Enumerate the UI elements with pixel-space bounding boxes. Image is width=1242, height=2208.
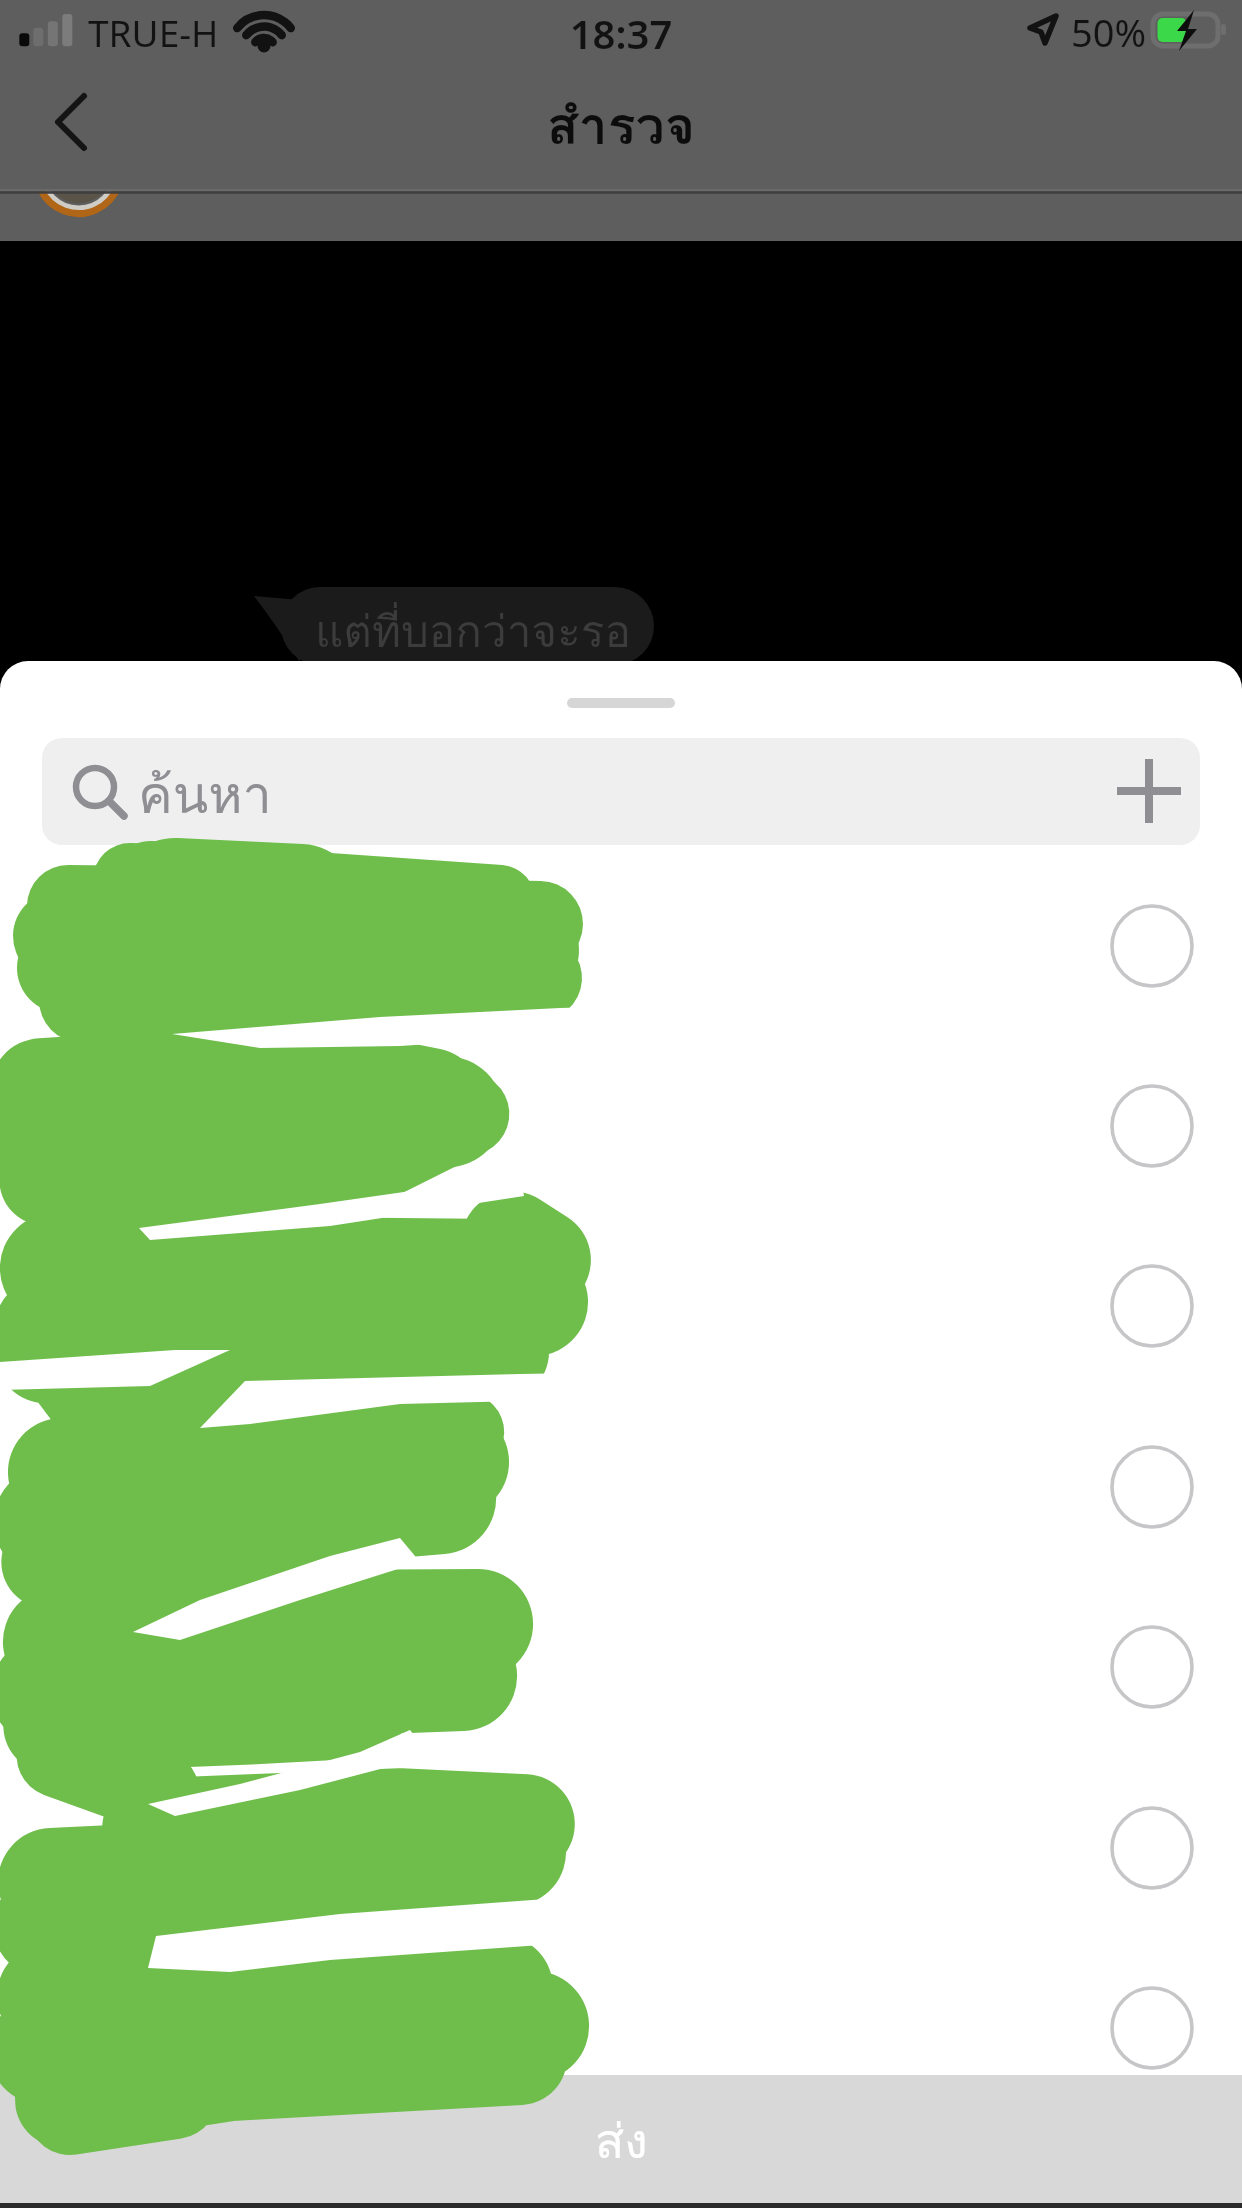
button[interactable]: Back <box>18 72 122 176</box>
button[interactable]: Contact row <box>0 1938 1242 2118</box>
button[interactable]: Contact row <box>0 1758 1242 1938</box>
staticText: สำรวจ <box>0 84 1242 167</box>
staticText: ส่ง <box>595 2103 648 2179</box>
staticText: แต่ที่บอกว่าจะรอ <box>315 596 631 666</box>
staticText: 50% <box>1071 6 1147 58</box>
button[interactable]: Contact row <box>0 1397 1242 1577</box>
button[interactable]: Contact row <box>0 1036 1242 1216</box>
staticText: TRUE-H <box>88 7 219 57</box>
staticText: 18:37 <box>0 6 1242 60</box>
staticText: ค้นหา <box>138 753 272 836</box>
button[interactable]: ค้นหา <box>42 738 1200 845</box>
button[interactable]: Contact row <box>0 856 1242 1036</box>
button[interactable]: New group <box>1101 743 1197 839</box>
button[interactable]: Contact row <box>0 1577 1242 1757</box>
button[interactable]: ส่ง <box>0 2075 1242 2206</box>
button[interactable]: Contact row <box>0 1216 1242 1396</box>
